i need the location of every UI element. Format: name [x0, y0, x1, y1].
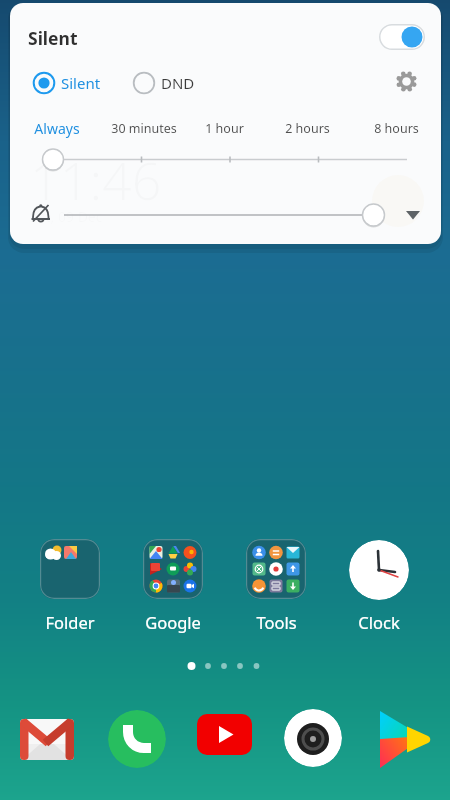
button[interactable]: Always	[10, 117, 107, 139]
staticText: Silent	[61, 73, 101, 93]
button[interactable]	[284, 709, 342, 767]
staticText: 8 hours	[374, 120, 419, 137]
staticText: Silent	[28, 26, 78, 50]
button[interactable]: Silent	[32, 69, 122, 97]
staticText: Folder	[45, 611, 95, 633]
button[interactable]	[40, 539, 100, 599]
staticText: 11:46	[30, 144, 162, 215]
button[interactable]: DND	[132, 69, 212, 97]
staticText: DND	[161, 73, 195, 93]
button[interactable]	[374, 707, 434, 771]
button[interactable]	[246, 539, 306, 599]
button[interactable]: 8 hours	[346, 118, 441, 138]
button[interactable]	[54, 201, 386, 229]
button[interactable]	[349, 540, 409, 600]
button[interactable]	[108, 710, 166, 768]
button[interactable]: 30 minutes	[94, 118, 194, 138]
button[interactable]	[400, 203, 426, 227]
staticText: 30 minutes	[111, 120, 177, 137]
button[interactable]	[143, 539, 203, 599]
staticText: Google	[145, 611, 201, 633]
button[interactable]	[196, 713, 254, 757]
staticText: Always	[34, 119, 80, 138]
button[interactable]	[379, 24, 425, 50]
button[interactable]	[392, 67, 421, 96]
staticText: 1 hour	[205, 120, 244, 137]
button[interactable]: 2 hours	[257, 118, 357, 138]
staticText: Sat, 09 Dec	[30, 207, 103, 226]
button[interactable]: 1 hour	[174, 118, 274, 138]
staticText: 2 hours	[285, 120, 330, 137]
staticText: Tools	[256, 611, 297, 633]
button[interactable]	[40, 146, 420, 173]
staticText: Clock	[358, 611, 400, 633]
button[interactable]	[18, 710, 76, 768]
